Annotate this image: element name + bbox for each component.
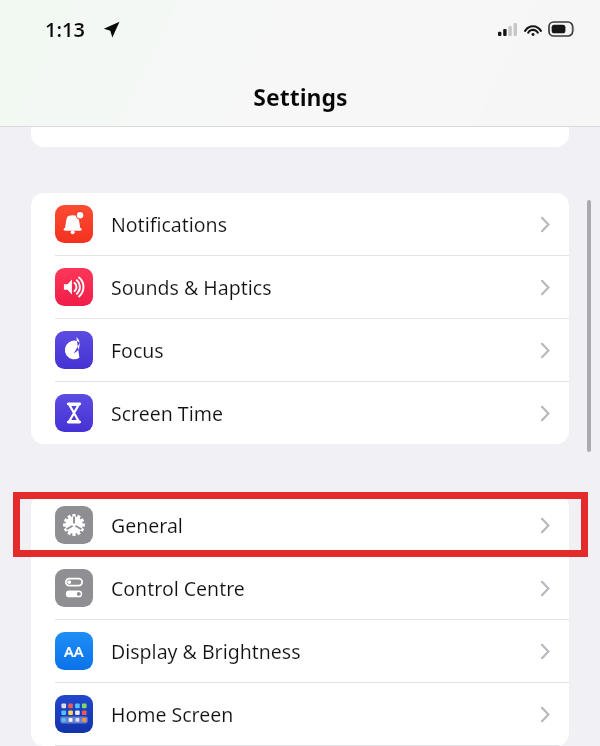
- staticText: Display & Brightness: [111, 638, 301, 665]
- staticText: 1:13: [45, 16, 85, 43]
- staticText: AA: [64, 641, 84, 661]
- staticText: Control Centre: [111, 575, 245, 602]
- button[interactable]: Screen Time: [31, 382, 569, 444]
- staticText: General: [111, 512, 183, 539]
- staticText: Home Screen: [111, 701, 234, 728]
- button[interactable]: AA: [31, 620, 569, 682]
- other: Battery: [549, 22, 576, 36]
- staticText: Focus: [111, 337, 164, 364]
- staticText: Screen Time: [111, 400, 223, 427]
- button[interactable]: Sounds & Haptics: [31, 256, 569, 318]
- button[interactable]: Notifications: [31, 193, 569, 255]
- button[interactable]: General: [31, 494, 569, 556]
- staticText: Settings: [253, 81, 348, 112]
- other: Cellular signal: [498, 23, 517, 36]
- staticText: Sounds & Haptics: [111, 274, 272, 301]
- button[interactable]: Control Centre: [31, 557, 569, 619]
- button[interactable]: Home Screen: [31, 683, 569, 745]
- other: Location in use: [103, 21, 120, 38]
- other: Wi-Fi: [524, 23, 542, 36]
- staticText: Notifications: [111, 211, 227, 238]
- button[interactable]: Focus: [31, 319, 569, 381]
